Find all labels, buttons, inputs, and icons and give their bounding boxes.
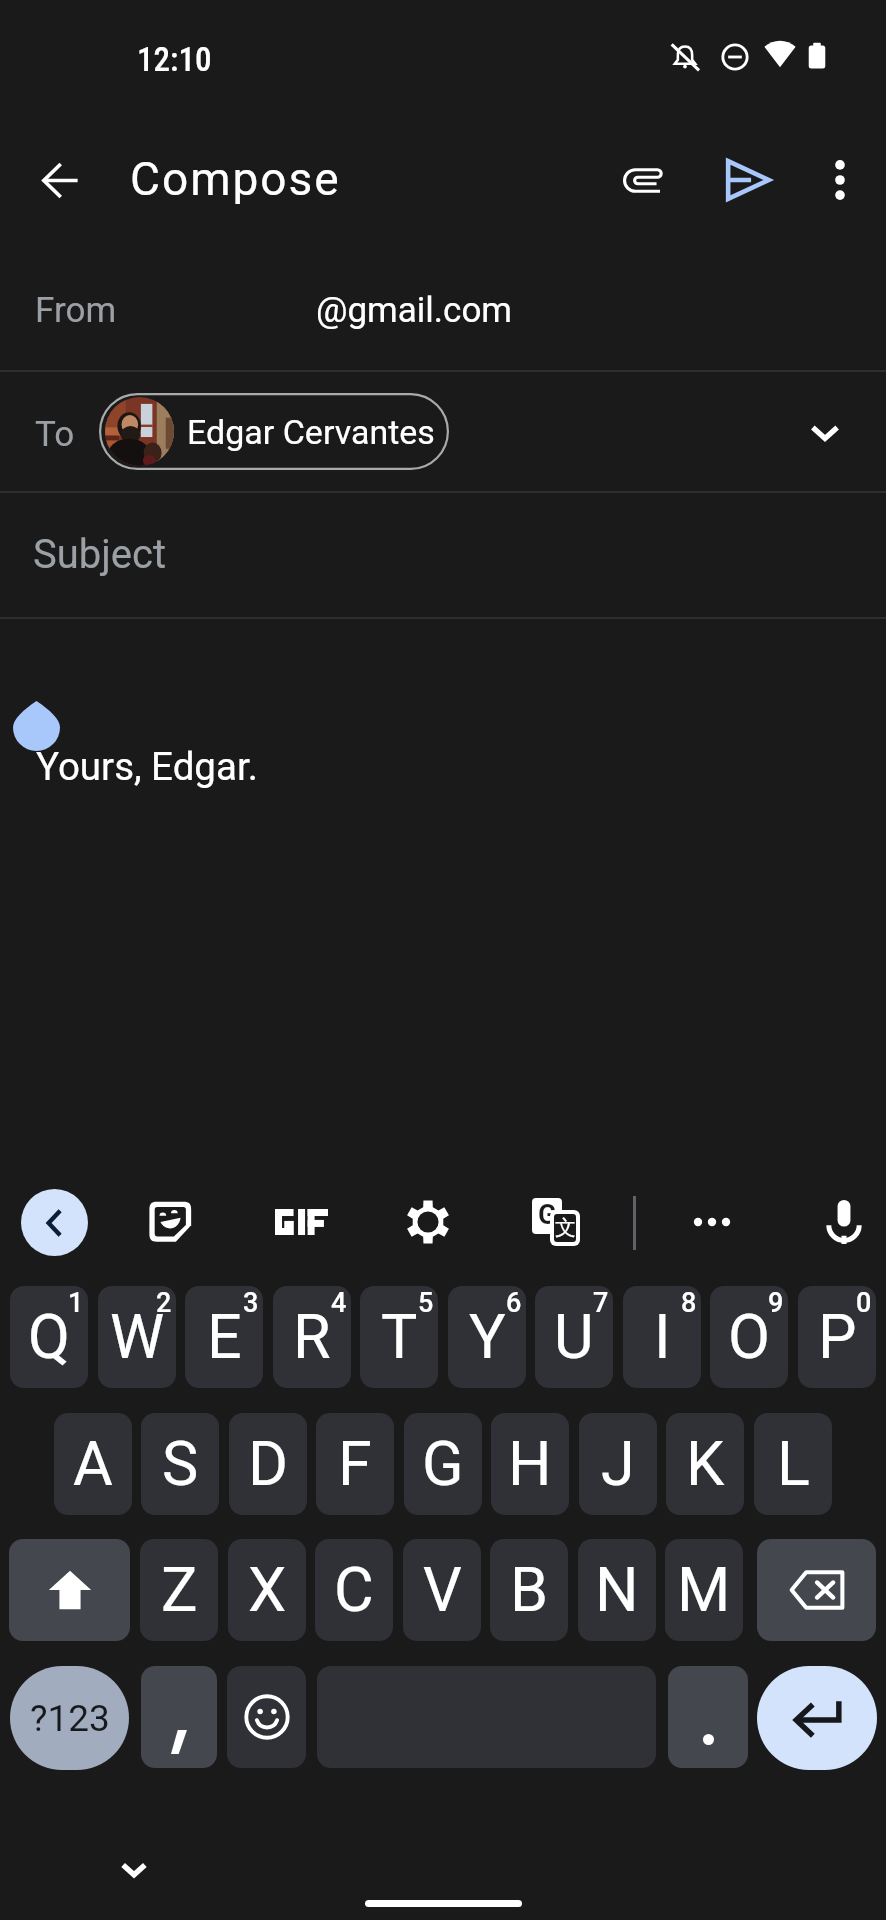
staticText: Edgar Cervantes — [187, 412, 435, 452]
staticText: O — [728, 1301, 770, 1372]
staticText: F — [338, 1428, 372, 1499]
button[interactable]: Y — [448, 1286, 526, 1388]
staticText: S — [162, 1428, 199, 1499]
staticText: J — [601, 1428, 635, 1499]
staticText: P — [818, 1301, 857, 1372]
staticText: 3 — [243, 1287, 259, 1319]
button[interactable]: Settings — [390, 1184, 466, 1260]
staticText: N — [595, 1554, 639, 1625]
staticText: X — [248, 1554, 287, 1625]
button[interactable]: O — [710, 1286, 788, 1388]
button[interactable]: H — [491, 1413, 569, 1515]
button[interactable]: M — [665, 1539, 743, 1641]
staticText: 0 — [856, 1287, 872, 1319]
button[interactable]: Enter — [757, 1666, 877, 1770]
button[interactable]: B — [490, 1539, 568, 1641]
button[interactable]: G — [404, 1413, 482, 1515]
staticText: Y — [469, 1301, 506, 1372]
button[interactable]: I — [623, 1286, 701, 1388]
button[interactable]: C — [315, 1539, 393, 1641]
button[interactable]: More — [674, 1184, 750, 1260]
staticText: R — [293, 1301, 331, 1372]
button[interactable]: Expand recipients — [789, 396, 861, 468]
button[interactable]: Backspace — [757, 1539, 876, 1641]
button[interactable]: Stickers — [133, 1184, 209, 1260]
button[interactable]: L — [754, 1413, 832, 1515]
staticText: Subject — [33, 531, 167, 578]
staticText: Compose — [130, 152, 341, 206]
staticText: 7 — [593, 1287, 609, 1319]
staticText: W — [110, 1301, 165, 1372]
button[interactable]: K — [666, 1413, 744, 1515]
button[interactable]: D — [229, 1413, 307, 1515]
button[interactable]: From — [0, 250, 886, 370]
staticText: I — [654, 1301, 671, 1372]
staticText: 9 — [768, 1287, 784, 1319]
button[interactable]: T — [360, 1286, 438, 1388]
button[interactable]: Shift — [9, 1539, 130, 1641]
staticText: C — [334, 1554, 374, 1625]
staticText: E — [207, 1301, 242, 1372]
button[interactable]: Q — [10, 1286, 88, 1388]
button[interactable]: Send — [709, 142, 785, 218]
button[interactable]: R — [273, 1286, 351, 1388]
staticText: @gmail.com — [316, 290, 513, 331]
button[interactable]: Back — [22, 142, 98, 218]
staticText: 12:10 — [137, 40, 212, 79]
staticText: M — [677, 1554, 731, 1625]
staticText: 6 — [506, 1287, 522, 1319]
button[interactable]: S — [141, 1413, 219, 1515]
button[interactable]: More options — [802, 142, 878, 218]
staticText: 5 — [418, 1287, 434, 1319]
staticText: U — [554, 1301, 594, 1372]
button[interactable]: E — [185, 1286, 263, 1388]
button[interactable]: N — [578, 1539, 656, 1641]
staticText: K — [686, 1428, 725, 1499]
button[interactable]: J — [579, 1413, 657, 1515]
button[interactable]: P — [798, 1286, 876, 1388]
button[interactable]: Edgar Cervantes — [99, 393, 449, 470]
staticText: A — [73, 1428, 113, 1499]
staticText: V — [423, 1554, 462, 1625]
staticText: B — [510, 1554, 549, 1625]
button[interactable]: Symbols — [10, 1666, 129, 1770]
button[interactable]: Subject — [0, 492, 886, 617]
button[interactable]: F — [316, 1413, 394, 1515]
button[interactable]: V — [403, 1539, 481, 1641]
button[interactable]: U — [535, 1286, 613, 1388]
button[interactable]: W — [98, 1286, 176, 1388]
button[interactable]: Period — [668, 1666, 748, 1768]
staticText: T — [381, 1301, 418, 1372]
staticText: 1 — [68, 1287, 84, 1319]
staticText: Z — [161, 1554, 198, 1625]
staticText: H — [508, 1428, 552, 1499]
button[interactable]: GIF — [263, 1184, 339, 1260]
button[interactable]: A — [54, 1413, 132, 1515]
button[interactable]: Z — [140, 1539, 218, 1641]
staticText: G — [422, 1428, 464, 1499]
button[interactable]: Previous — [21, 1189, 88, 1256]
staticText: 2 — [156, 1287, 172, 1319]
button[interactable]: Emoji — [227, 1666, 306, 1768]
staticText: G — [538, 1199, 557, 1231]
staticText: 8 — [681, 1287, 697, 1319]
staticText: Q — [28, 1301, 70, 1372]
staticText: 4 — [331, 1287, 347, 1319]
button[interactable]: Voice input — [806, 1184, 882, 1260]
staticText: D — [248, 1428, 289, 1499]
staticText: From — [35, 290, 117, 331]
staticText: Yours, Edgar. — [36, 744, 258, 789]
staticText: ?123 — [30, 1697, 110, 1740]
staticText: To — [35, 414, 75, 455]
button[interactable]: Hide keyboard — [104, 1839, 164, 1899]
button[interactable]: Comma — [141, 1666, 217, 1768]
button[interactable]: X — [228, 1539, 306, 1641]
staticText: L — [777, 1428, 810, 1499]
button[interactable]: Attach file — [606, 142, 682, 218]
button[interactable]: Translate — [518, 1184, 594, 1260]
staticText: 文 — [555, 1215, 576, 1241]
